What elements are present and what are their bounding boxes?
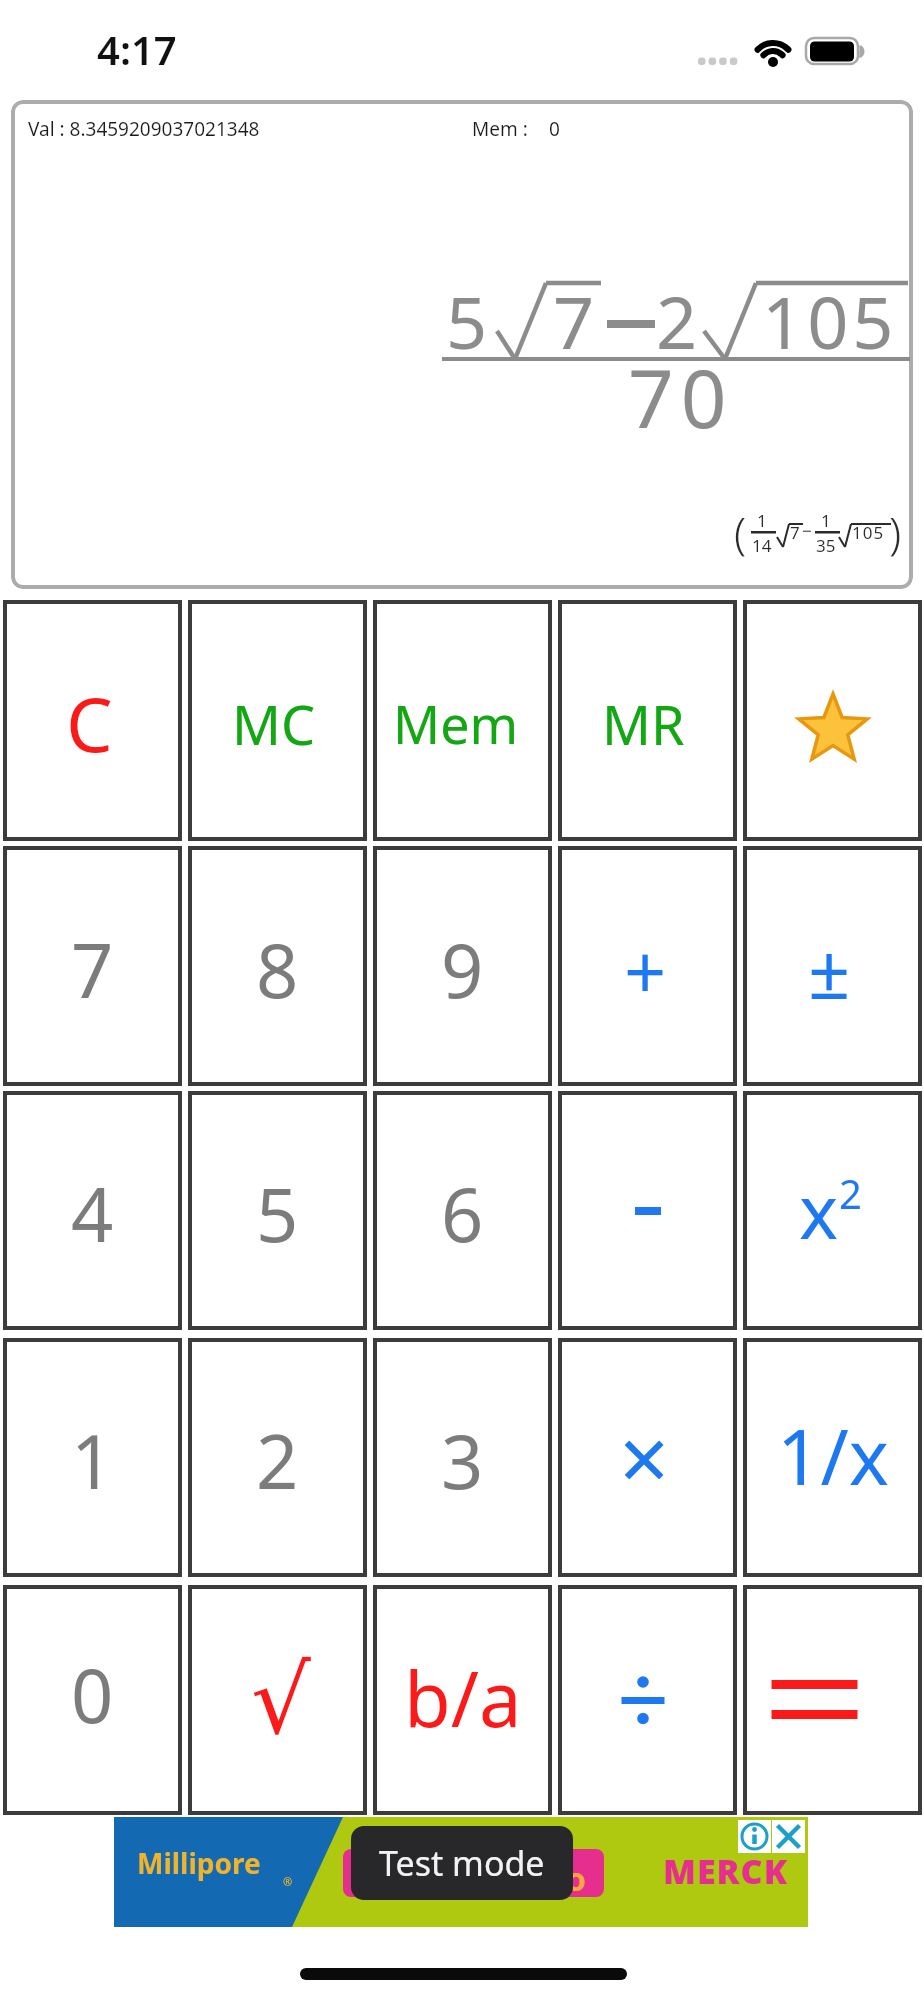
staticText: 2 xyxy=(839,1166,862,1220)
staticText: 105 xyxy=(762,272,898,370)
button[interactable]: Mem xyxy=(373,600,552,841)
button[interactable]: C xyxy=(3,600,182,841)
staticText: b/a xyxy=(404,1646,522,1750)
button[interactable]: 7 xyxy=(3,846,182,1086)
staticText: Millipore xyxy=(137,1844,261,1882)
button[interactable]: x xyxy=(743,1091,922,1330)
staticText: 7 xyxy=(553,272,595,370)
staticText: ± xyxy=(808,920,851,1021)
staticText: 5 xyxy=(256,1163,299,1264)
staticText: 5 xyxy=(446,272,488,370)
button[interactable]: 4 xyxy=(3,1091,182,1330)
button[interactable]: 1 xyxy=(3,1338,182,1577)
button[interactable]: × xyxy=(558,1338,737,1577)
staticText: × xyxy=(619,1397,670,1517)
staticText: 2 xyxy=(256,1410,299,1511)
button[interactable]: 6 xyxy=(373,1091,552,1330)
button[interactable]: MR xyxy=(558,600,737,841)
staticText: 105 xyxy=(852,521,885,544)
button[interactable] xyxy=(558,1091,737,1330)
staticText: MR xyxy=(602,687,685,761)
button[interactable]: 9 xyxy=(373,846,552,1086)
staticText: 14 xyxy=(752,534,772,557)
staticText: 1 xyxy=(821,509,831,532)
staticText: C xyxy=(66,673,113,774)
button[interactable]: 8 xyxy=(188,846,367,1086)
button[interactable]: Millipore xyxy=(114,1817,808,1927)
button[interactable]: MC xyxy=(188,600,367,841)
staticText: Val : 8.3459209037021348 xyxy=(28,116,260,142)
staticText: 1/x xyxy=(777,1404,889,1508)
button[interactable] xyxy=(743,1585,922,1815)
staticText: x xyxy=(799,1160,839,1261)
button[interactable] xyxy=(558,1585,737,1815)
staticText: 2 xyxy=(656,272,698,370)
button[interactable]: 1/x xyxy=(743,1338,922,1577)
button[interactable]: 2 xyxy=(188,1338,367,1577)
button[interactable] xyxy=(743,600,922,841)
staticText: o xyxy=(566,1857,587,1901)
staticText: 6 xyxy=(441,1163,484,1264)
staticText: 8 xyxy=(256,919,299,1020)
staticText: 7 xyxy=(790,521,800,544)
staticText: 35 xyxy=(816,534,836,557)
staticText: √ xyxy=(251,1646,311,1755)
button[interactable]: 5 xyxy=(188,1091,367,1330)
staticText: + xyxy=(624,920,667,1021)
staticText: 70 xyxy=(628,342,734,451)
button[interactable]: ± xyxy=(743,846,922,1086)
staticText: 1 xyxy=(71,1410,114,1511)
staticText: Test mode xyxy=(379,1840,545,1886)
staticText: 4:17 xyxy=(97,22,177,76)
staticText: ) xyxy=(889,503,902,563)
staticText: 4 xyxy=(71,1163,114,1264)
staticText: Mem : xyxy=(472,116,528,142)
staticText: 0 xyxy=(549,116,560,142)
button[interactable]: √ xyxy=(188,1585,367,1815)
button[interactable]: + xyxy=(558,846,737,1086)
staticText: MC xyxy=(232,687,316,761)
staticText: 3 xyxy=(441,1410,484,1511)
button[interactable]: 3 xyxy=(373,1338,552,1577)
staticText: 9 xyxy=(441,919,484,1020)
staticText: Mem xyxy=(393,688,519,759)
button[interactable]: b/a xyxy=(373,1585,552,1815)
staticText: MERCK xyxy=(663,1848,788,1894)
staticText: − xyxy=(802,519,812,542)
button[interactable]: 0 xyxy=(3,1585,182,1815)
staticText: 0 xyxy=(71,1644,114,1745)
staticText: 7 xyxy=(71,919,114,1020)
staticText: 1 xyxy=(757,509,767,532)
staticText: ( xyxy=(734,503,747,563)
staticText: ® xyxy=(283,1874,293,1889)
